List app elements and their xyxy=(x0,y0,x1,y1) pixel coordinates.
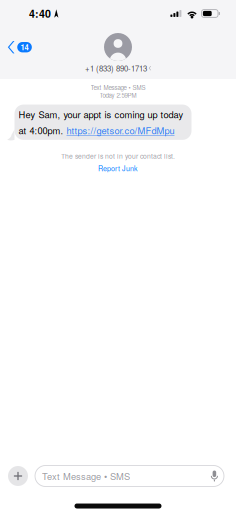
button[interactable]: Dictate xyxy=(211,470,218,482)
staticText: Today 2:59PM xyxy=(99,91,136,100)
button[interactable]: Add attachment xyxy=(8,466,28,486)
staticText: The sender is not in your contact list. xyxy=(61,151,175,161)
staticText: 4:40 xyxy=(29,6,51,21)
button[interactable]: +1 (833) 890-1713 xyxy=(85,33,151,74)
staticText: https://getsor.co/MFdMpu xyxy=(66,123,174,137)
staticText: +1 (833) 890-1713 xyxy=(85,63,147,74)
staticText: at 4:00pm. xyxy=(18,123,66,137)
button[interactable]: Report Junk xyxy=(98,163,138,173)
staticText: Text Message • SMS xyxy=(90,83,145,92)
staticText: Text Message • SMS xyxy=(42,469,130,483)
staticText: Hey Sam, your appt is coming up today xyxy=(18,108,183,121)
staticText: 14 xyxy=(20,42,28,53)
button[interactable]: 14 xyxy=(0,35,40,59)
staticText: Report Junk xyxy=(98,163,138,173)
